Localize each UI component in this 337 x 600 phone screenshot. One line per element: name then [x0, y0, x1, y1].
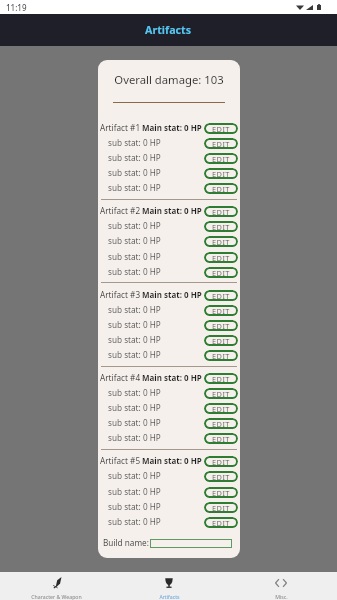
button[interactable]: EDIT — [204, 502, 238, 513]
button[interactable]: EDIT — [204, 335, 238, 346]
staticText: EDIT — [212, 434, 230, 444]
staticText: EDIT — [212, 472, 230, 482]
button[interactable]: EDIT — [204, 487, 238, 498]
staticText: sub stat: 0 HP — [108, 432, 161, 443]
staticText: EDIT — [212, 154, 230, 164]
staticText: EDIT — [212, 139, 230, 149]
staticText: sub stat: 0 HP — [108, 266, 161, 277]
staticText: EDIT — [212, 503, 230, 513]
staticText: sub stat: 0 HP — [108, 304, 161, 315]
staticText: sub stat: 0 HP — [108, 349, 161, 360]
staticText: sub stat: 0 HP — [108, 516, 161, 527]
button[interactable]: EDIT — [204, 206, 238, 217]
staticText: EDIT — [212, 374, 230, 384]
button[interactable]: EDIT — [204, 183, 238, 194]
staticText: EDIT — [212, 222, 230, 232]
staticText: sub stat: 0 HP — [108, 137, 161, 148]
button[interactable]: EDIT — [204, 373, 238, 384]
button[interactable]: Artifacts — [113, 572, 225, 600]
staticText: EDIT — [212, 253, 230, 263]
button[interactable]: Character and Weapon — [0, 572, 113, 600]
staticText: EDIT — [212, 291, 230, 301]
staticText: Main stat: 0 HP — [142, 122, 202, 133]
staticText: EDIT — [212, 518, 230, 528]
staticText: 11:19 — [6, 2, 27, 13]
button[interactable]: Misc — [225, 572, 337, 600]
button[interactable]: EDIT — [204, 388, 238, 399]
staticText: sub stat: 0 HP — [108, 486, 161, 497]
staticText: Main stat: 0 HP — [142, 205, 202, 216]
button[interactable]: EDIT — [204, 433, 238, 444]
staticText: sub stat: 0 HP — [108, 251, 161, 262]
staticText: sub stat: 0 HP — [108, 501, 161, 512]
staticText: EDIT — [212, 169, 230, 179]
staticText: EDIT — [212, 488, 230, 498]
staticText: EDIT — [212, 237, 230, 247]
button[interactable]: EDIT — [204, 456, 238, 467]
button[interactable]: EDIT — [204, 403, 238, 414]
staticText: EDIT — [212, 457, 230, 467]
staticText: EDIT — [212, 321, 230, 331]
button[interactable]: EDIT — [204, 517, 238, 528]
button[interactable]: EDIT — [204, 267, 238, 278]
button[interactable]: EDIT — [204, 123, 238, 134]
button[interactable]: EDIT — [204, 138, 238, 149]
button[interactable]: EDIT — [204, 350, 238, 361]
button[interactable]: EDIT — [204, 418, 238, 429]
staticText: EDIT — [212, 336, 230, 346]
staticText: EDIT — [212, 389, 230, 399]
staticText: sub stat: 0 HP — [108, 235, 161, 246]
staticText: Overall damage: 103 — [98, 72, 240, 87]
staticText: Artifact #4 — [100, 372, 141, 383]
staticText: Artifact #2 — [100, 205, 141, 216]
staticText: sub stat: 0 HP — [108, 319, 161, 330]
button[interactable]: EDIT — [204, 290, 238, 301]
staticText: Artifacts — [145, 23, 192, 38]
staticText: sub stat: 0 HP — [108, 152, 161, 163]
button[interactable]: EDIT — [204, 320, 238, 331]
button[interactable] — [150, 539, 232, 548]
staticText: sub stat: 0 HP — [108, 167, 161, 178]
staticText: Main stat: 0 HP — [142, 289, 202, 300]
button[interactable]: EDIT — [204, 252, 238, 263]
staticText: EDIT — [212, 124, 230, 134]
staticText: Artifact #5 — [100, 455, 141, 466]
button[interactable]: EDIT — [204, 236, 238, 247]
staticText: Character & Weapon — [31, 593, 82, 600]
button[interactable]: EDIT — [204, 221, 238, 232]
button[interactable]: EDIT — [204, 168, 238, 179]
button[interactable]: EDIT — [204, 305, 238, 316]
staticText: sub stat: 0 HP — [108, 402, 161, 413]
staticText: sub stat: 0 HP — [108, 387, 161, 398]
staticText: EDIT — [212, 268, 230, 278]
staticText: sub stat: 0 HP — [108, 470, 161, 481]
staticText: Artifact #3 — [100, 289, 141, 300]
staticText: sub stat: 0 HP — [108, 334, 161, 345]
button[interactable]: EDIT — [204, 471, 238, 482]
staticText: Build name: — [103, 537, 149, 548]
staticText: EDIT — [212, 419, 230, 429]
staticText: sub stat: 0 HP — [108, 417, 161, 428]
staticText: Artifacts — [159, 593, 180, 600]
button[interactable]: EDIT — [204, 153, 238, 164]
staticText: EDIT — [212, 184, 230, 194]
staticText: EDIT — [212, 207, 230, 217]
staticText: sub stat: 0 HP — [108, 182, 161, 193]
staticText: sub stat: 0 HP — [108, 220, 161, 231]
staticText: EDIT — [212, 404, 230, 414]
staticText: Main stat: 0 HP — [142, 455, 202, 466]
staticText: Artifact #1 — [100, 122, 141, 133]
staticText: EDIT — [212, 351, 230, 361]
staticText: Main stat: 0 HP — [142, 372, 202, 383]
staticText: Misc. — [275, 593, 288, 600]
staticText: EDIT — [212, 306, 230, 316]
